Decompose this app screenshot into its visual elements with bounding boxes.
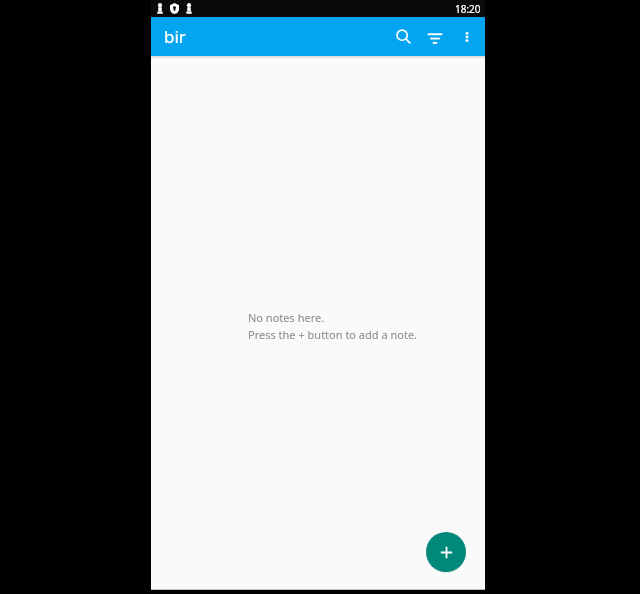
staticText: No notes here. bbox=[248, 310, 325, 325]
button[interactable]: More options bbox=[451, 17, 483, 56]
button[interactable]: Search bbox=[387, 17, 419, 56]
button[interactable]: Filter bbox=[419, 17, 451, 56]
staticText: Press the + button to add a note. bbox=[248, 327, 418, 342]
staticText: 18:20 bbox=[455, 2, 481, 16]
button[interactable]: Add a note bbox=[426, 532, 466, 572]
staticText: bir bbox=[164, 25, 186, 48]
